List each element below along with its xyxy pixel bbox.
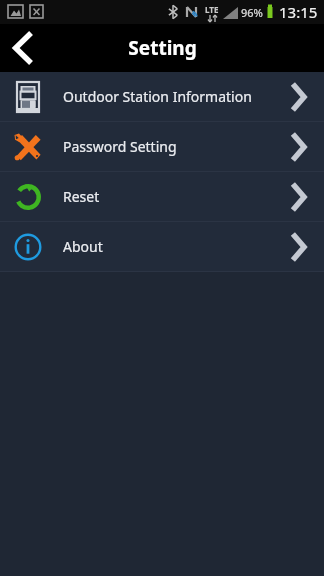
- staticText: Outdoor Station Information: [63, 87, 278, 106]
- button[interactable]: Password Setting: [0, 122, 324, 171]
- button[interactable]: About: [0, 222, 324, 271]
- staticText: Reset: [63, 187, 278, 206]
- staticText: LTE: [205, 4, 219, 15]
- button[interactable]: About: [278, 227, 318, 267]
- button[interactable]: Reset: [0, 172, 324, 221]
- button[interactable]: Outdoor Station Information: [278, 77, 318, 117]
- staticText: 96%: [241, 5, 263, 20]
- staticText: About: [63, 237, 278, 256]
- staticText: 13:15: [279, 2, 318, 22]
- button[interactable]: Outdoor Station Information: [0, 72, 324, 121]
- staticText: Password Setting: [63, 137, 278, 156]
- button[interactable]: Back: [0, 24, 48, 72]
- staticText: Setting: [128, 35, 197, 61]
- button[interactable]: Password Setting: [278, 127, 318, 167]
- button[interactable]: Reset: [278, 177, 318, 217]
